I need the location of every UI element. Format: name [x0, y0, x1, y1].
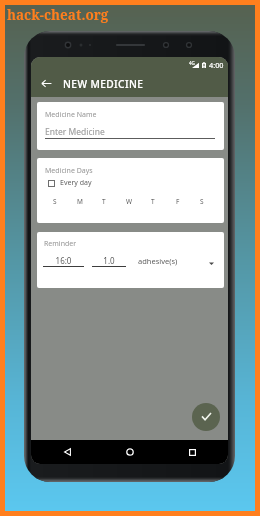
- button[interactable]: T: [98, 195, 110, 207]
- staticText: hack-cheat.org: [7, 6, 109, 24]
- button[interactable]: M: [74, 195, 86, 207]
- button[interactable]: Dropdown: [204, 256, 218, 270]
- button[interactable]: Home: [122, 444, 138, 460]
- staticText: Medicine Days: [45, 166, 93, 176]
- staticText: T: [151, 197, 155, 206]
- staticText: T: [102, 197, 106, 206]
- staticText: S: [200, 197, 204, 206]
- staticText: 1.0: [92, 255, 126, 266]
- button[interactable]: Recents: [184, 444, 200, 460]
- staticText: W: [126, 197, 133, 206]
- staticText: Medicine Name: [45, 110, 97, 120]
- button[interactable]: 16:0: [43, 255, 84, 266]
- button[interactable]: 1.0: [92, 255, 126, 266]
- button[interactable]: Back: [59, 444, 75, 460]
- button[interactable]: Every day: [48, 178, 92, 188]
- button[interactable]: S: [196, 195, 208, 207]
- staticText: 16:0: [43, 255, 84, 266]
- staticText: Every day: [60, 178, 92, 188]
- button[interactable]: W: [123, 195, 135, 207]
- staticText: Enter Medicine: [45, 126, 105, 138]
- staticText: 4G: [189, 60, 195, 66]
- button[interactable]: S: [49, 195, 61, 207]
- staticText: NEW MEDICINE: [63, 77, 144, 91]
- staticText: Reminder: [44, 239, 77, 249]
- staticText: 4:00: [209, 60, 224, 70]
- button[interactable]: Back: [35, 72, 57, 94]
- staticText: adhesive(s): [138, 256, 178, 266]
- staticText: S: [53, 197, 57, 206]
- button[interactable]: Save: [192, 403, 220, 431]
- button[interactable]: F: [172, 195, 184, 207]
- button[interactable]: T: [147, 195, 159, 207]
- staticText: M: [77, 197, 83, 206]
- staticText: F: [176, 197, 180, 206]
